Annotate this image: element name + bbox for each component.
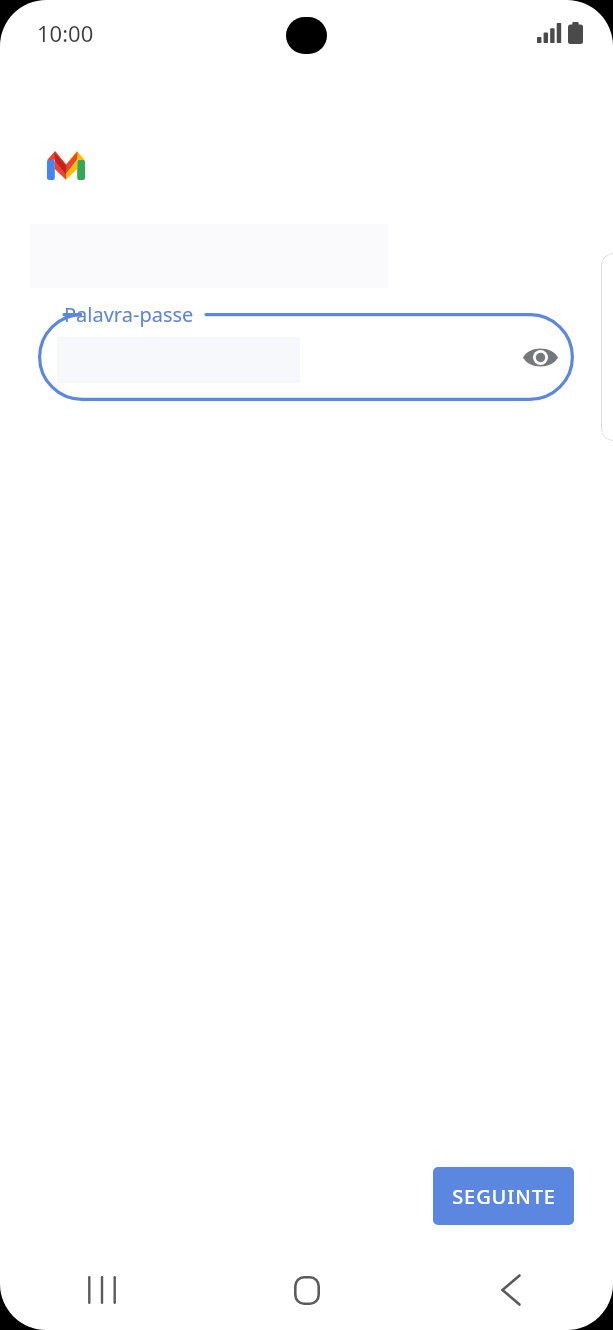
button[interactable]: Voltar	[409, 1250, 613, 1330]
button[interactable]: Início	[204, 1250, 409, 1330]
button[interactable]: Recentes	[0, 1250, 204, 1330]
staticText: 10:00	[37, 18, 94, 48]
button[interactable]: SEGUINTE	[433, 1167, 574, 1225]
button[interactable]	[50, 321, 510, 393]
staticText: SEGUINTE	[452, 1183, 556, 1210]
staticText: Palavra-passe	[64, 301, 194, 328]
button[interactable]: Mostrar palavra-passe	[516, 333, 564, 381]
